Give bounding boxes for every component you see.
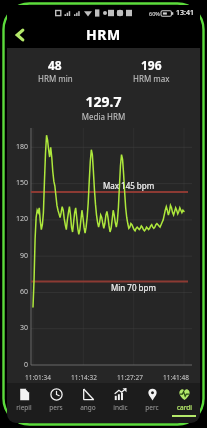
staticText: HRM max [133,73,170,84]
button[interactable]: pers [40,383,72,423]
staticText: 11:14:32 [61,373,107,382]
staticText: indic [113,403,128,412]
button[interactable]: indic [104,383,136,423]
button[interactable]: riepil [7,383,40,423]
staticText: 150 [16,178,29,188]
staticText: 196 [141,57,162,73]
staticText: 120 [16,214,29,224]
staticText: Media HRM [7,111,200,122]
staticText: 90 [20,251,29,261]
staticText: 60% [149,10,160,17]
staticText: Max 145 bpm [103,180,155,191]
staticText: 11:01:34 [15,373,61,382]
button[interactable]: cardi [168,383,200,423]
button[interactable]: ango [72,383,104,423]
staticText: 60 [20,287,29,297]
staticText: 0 [24,360,29,370]
staticText: perc [145,403,159,412]
staticText: cardi [177,403,192,412]
staticText: 129.7 [7,92,200,111]
staticText: Min 70 bpm [111,282,156,293]
staticText: pers [49,403,63,412]
staticText: HRM [86,25,121,44]
staticText: HRM min [38,73,73,84]
staticText: 180 [16,142,29,152]
staticText: ango [80,403,96,412]
staticText: 11:27:27 [107,373,153,382]
staticText: 30 [20,323,29,333]
button[interactable]: perc [136,383,168,423]
staticText: 11:41:48 [153,373,199,382]
staticText: 13:41 [176,8,194,18]
staticText: 48 [48,57,62,73]
button[interactable]: Back [7,22,33,48]
staticText: riepil [16,403,32,412]
